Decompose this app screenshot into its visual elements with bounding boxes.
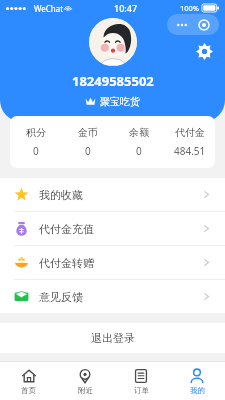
button[interactable]: 代付金充值	[0, 212, 225, 245]
staticText: 金币	[78, 126, 98, 139]
staticText: 10:47	[114, 2, 138, 14]
staticText: 积分	[26, 126, 46, 139]
button[interactable]: 积分	[10, 126, 62, 158]
button[interactable]: 意见反馈	[0, 280, 225, 313]
button[interactable]: 我的收藏	[0, 178, 225, 211]
button[interactable]: 我的	[169, 362, 225, 400]
staticText: 聚宝吃货	[100, 95, 140, 108]
staticText: 18249585502	[72, 72, 154, 90]
staticText: 代付金转赠	[39, 256, 94, 270]
staticText: 484.51	[174, 144, 206, 158]
button[interactable]: Mini program menu	[167, 14, 219, 35]
button[interactable]: 余额	[113, 126, 164, 158]
button[interactable]: 首页	[0, 362, 57, 400]
button[interactable]: 代付金	[164, 126, 215, 158]
staticText: 0	[33, 144, 39, 158]
staticText: 0	[85, 144, 91, 158]
staticText: 代付金充值	[39, 222, 94, 236]
staticText: 附近	[78, 386, 93, 395]
staticText: 我的收藏	[39, 188, 83, 202]
staticText: WeChat	[34, 3, 64, 14]
staticText: 意见反馈	[39, 290, 83, 304]
staticText: 余额	[129, 126, 149, 139]
staticText: 我的	[190, 386, 205, 395]
staticText: 退出登录	[91, 331, 135, 345]
button[interactable]: 附近	[57, 362, 113, 400]
button[interactable]: Settings	[193, 40, 215, 62]
button[interactable]: Profile avatar	[89, 18, 137, 66]
staticText: 0	[136, 144, 142, 158]
button[interactable]: 代付金转赠	[0, 246, 225, 279]
staticText: 代付金	[175, 126, 205, 139]
button[interactable]: 退出登录	[0, 323, 225, 353]
staticText: 订单	[134, 386, 149, 395]
button[interactable]: 金币	[62, 126, 113, 158]
staticText: 首页	[21, 386, 36, 395]
staticText: 100%	[180, 3, 200, 13]
button[interactable]: 订单	[113, 362, 169, 400]
